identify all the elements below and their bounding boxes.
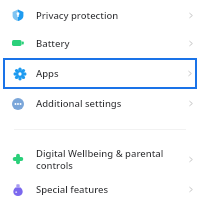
other: Open Battery bbox=[183, 39, 200, 48]
button[interactable]: Privacy protection bbox=[0, 1, 200, 29]
other: Open Special features bbox=[183, 185, 200, 194]
staticText: Additional settings bbox=[36, 97, 177, 110]
other: Open Digital Wellbeing & parental contro… bbox=[183, 155, 200, 164]
staticText: Digital Wellbeing & parental controls bbox=[36, 147, 177, 172]
staticText: Apps bbox=[36, 67, 177, 80]
button[interactable]: Special features bbox=[0, 179, 200, 200]
other: Open Additional settings bbox=[183, 99, 200, 108]
button[interactable]: Digital Wellbeing & parental controls bbox=[0, 143, 200, 175]
other: Open Privacy protection bbox=[183, 11, 200, 20]
button[interactable]: Additional settings bbox=[0, 89, 200, 118]
staticText: Battery bbox=[36, 37, 177, 50]
button[interactable]: Battery bbox=[0, 29, 200, 57]
button[interactable]: Apps bbox=[3, 58, 197, 89]
staticText: Privacy protection bbox=[36, 9, 177, 22]
staticText: Special features bbox=[36, 183, 177, 196]
other: Open Apps bbox=[183, 69, 197, 78]
